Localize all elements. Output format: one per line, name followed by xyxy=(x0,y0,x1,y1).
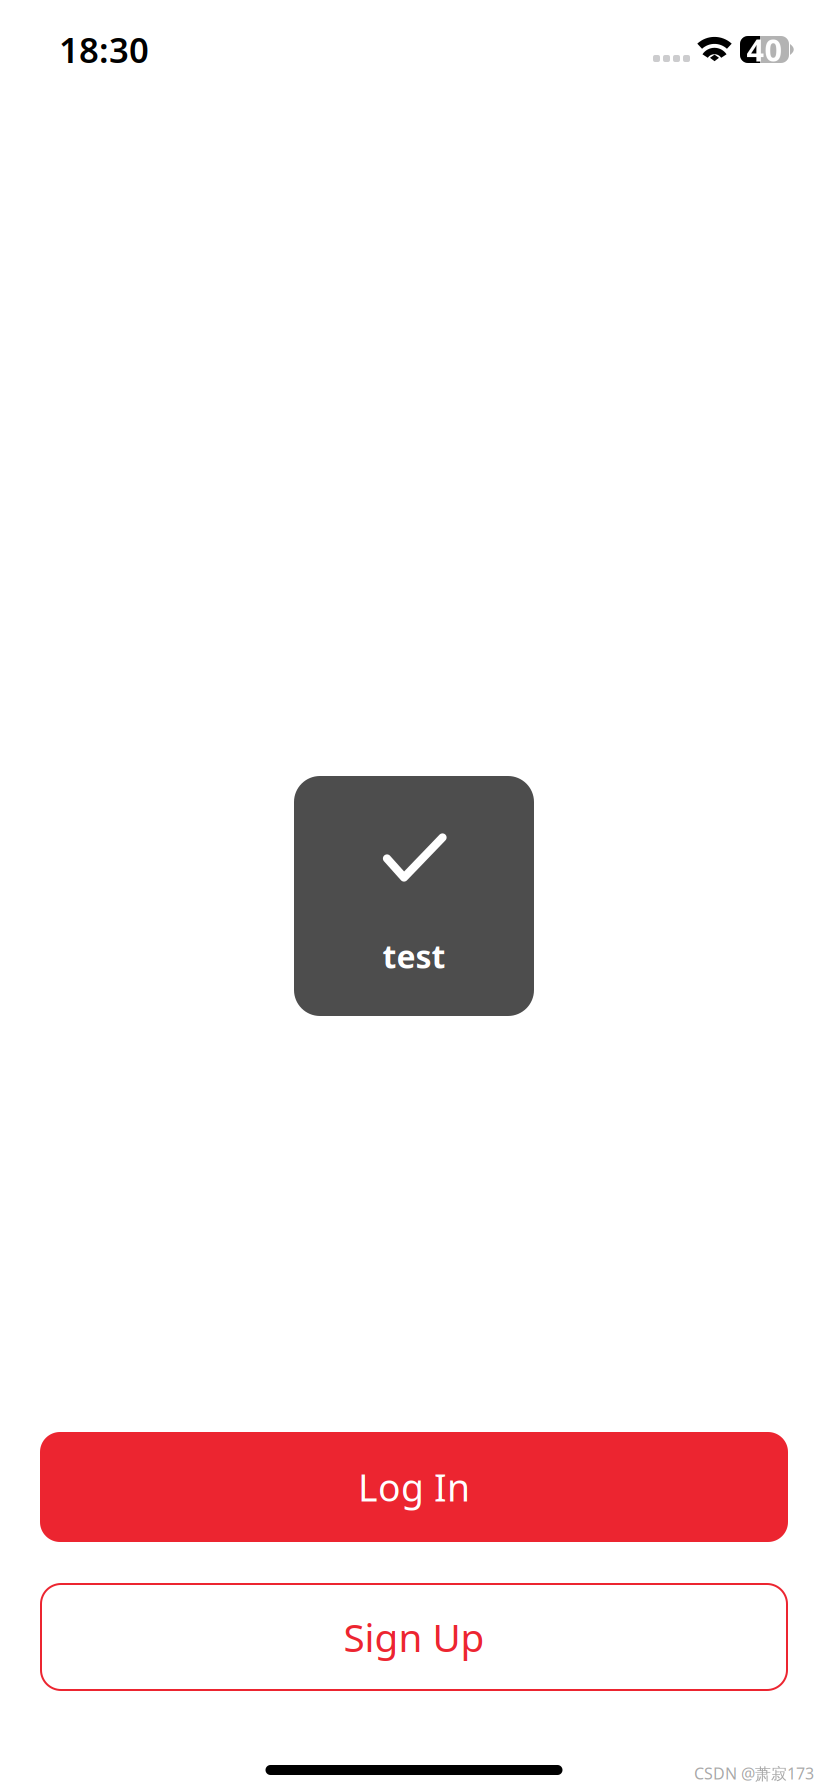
staticText: 18:30 xyxy=(59,26,149,72)
button[interactable]: Log In xyxy=(40,1432,788,1542)
staticText: CSDN @萧寂173 xyxy=(694,1763,814,1784)
button[interactable]: Sign Up xyxy=(40,1583,788,1691)
staticText: Log In xyxy=(358,1462,470,1512)
staticText: 40 xyxy=(746,29,782,70)
staticText: test xyxy=(382,935,445,977)
staticText: Sign Up xyxy=(343,1611,484,1663)
